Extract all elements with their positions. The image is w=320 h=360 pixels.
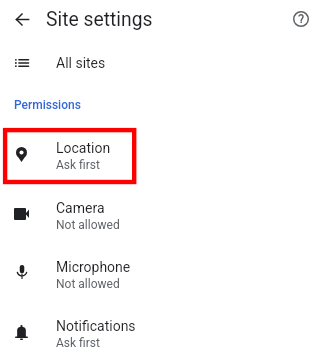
button[interactable]: Help <box>287 5 315 33</box>
staticText: Permissions <box>14 98 81 112</box>
button[interactable]: All sites <box>0 47 320 78</box>
button[interactable]: Notifications <box>0 306 320 360</box>
staticText: Location <box>56 140 111 156</box>
staticText: All sites <box>56 55 106 71</box>
button[interactable]: Location <box>0 128 320 184</box>
staticText: Ask first <box>56 336 100 350</box>
button[interactable]: Camera <box>0 188 320 244</box>
button[interactable]: Back <box>6 3 38 35</box>
staticText: Camera <box>56 200 105 216</box>
staticText: Notifications <box>56 318 136 334</box>
staticText: Not allowed <box>56 218 120 232</box>
staticText: Ask first <box>56 158 100 172</box>
staticText: Not allowed <box>56 277 120 291</box>
staticText: Microphone <box>56 259 131 275</box>
button[interactable]: Microphone <box>0 247 320 303</box>
staticText: Site settings <box>46 8 153 31</box>
